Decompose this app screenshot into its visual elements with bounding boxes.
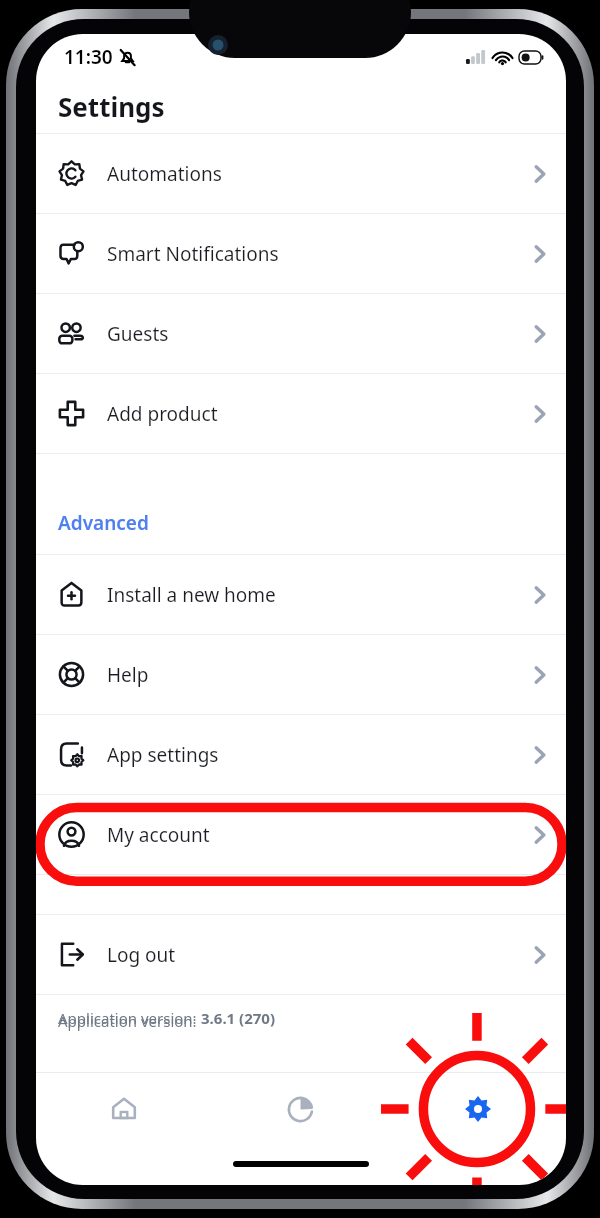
button[interactable]: App settings	[36, 715, 566, 794]
button[interactable]: Smart Notifications	[36, 214, 566, 293]
staticText: App settings	[107, 742, 219, 768]
staticText: My account	[107, 822, 210, 848]
staticText: Application version:	[58, 1008, 201, 1028]
staticText: Settings	[58, 89, 165, 124]
staticText: Smart Notifications	[107, 241, 279, 267]
button[interactable]: Guests	[36, 294, 566, 373]
button[interactable]: Automations	[36, 134, 566, 213]
staticText: Application version:	[58, 1011, 201, 1031]
button[interactable]: Settings	[389, 1073, 566, 1145]
button[interactable]: My account	[36, 795, 566, 874]
staticText: Automations	[107, 161, 222, 187]
staticText: Guests	[107, 321, 169, 347]
button[interactable]: Help	[36, 635, 566, 714]
staticText: Add product	[107, 401, 218, 427]
staticText: Advanced	[58, 510, 149, 536]
button[interactable]: Statistics	[212, 1073, 389, 1145]
button[interactable]: Log out	[36, 915, 566, 994]
staticText: 11:30	[64, 44, 113, 70]
button[interactable]: Add product	[36, 374, 566, 453]
staticText: Install a new home	[107, 582, 276, 608]
staticText: Log out	[107, 942, 176, 968]
staticText: Help	[107, 662, 149, 688]
button[interactable]: Home	[36, 1073, 212, 1145]
button[interactable]: Install a new home	[36, 555, 566, 634]
staticText: 3.6.1 (270)	[201, 1008, 275, 1028]
